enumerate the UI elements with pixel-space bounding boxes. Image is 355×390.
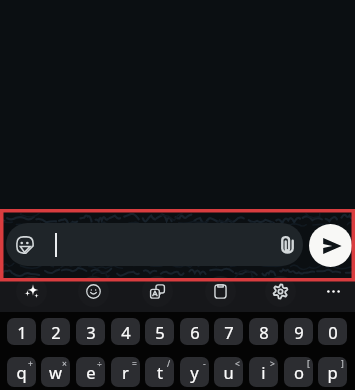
staticText: 6 [190,321,200,343]
button[interactable]: y [180,357,209,387]
staticText: + [28,358,33,370]
staticText: t [157,361,163,383]
button[interactable]: Send [309,224,352,267]
button[interactable]: u [214,357,243,387]
staticText: 2 [51,321,61,343]
staticText: 4 [121,321,131,343]
staticText: 8 [259,321,269,343]
button[interactable]: i [249,357,278,387]
button[interactable]: 6 [180,318,209,345]
staticText: o [294,361,304,383]
button[interactable]: 5 [145,318,174,345]
staticText: 3 [86,321,96,343]
staticText: / [167,358,171,370]
staticText: > [270,358,275,370]
button[interactable]: Clipboard [205,276,236,307]
staticText: y [190,361,199,383]
button[interactable]: r [111,357,140,387]
button[interactable]: 7 [214,318,243,345]
staticText: = [132,358,137,370]
button[interactable]: t [145,357,174,387]
staticText: 7 [224,321,234,343]
staticText: 9 [294,321,304,343]
staticText: < [235,358,240,370]
button[interactable]: 9 [284,318,313,345]
staticText: 1 [17,321,27,343]
button[interactable]: 8 [249,318,278,345]
button[interactable]: o [284,357,313,387]
staticText: i [261,361,266,383]
button[interactable]: q [7,357,36,387]
staticText: p [327,361,338,383]
staticText: [ [307,358,310,370]
staticText: e [86,361,96,383]
staticText: ÷ [97,358,102,370]
button[interactable]: p [318,357,347,387]
staticText: - [203,358,206,370]
button[interactable]: Emoji [78,276,109,307]
staticText: 0 [328,321,338,343]
button[interactable]: Translate [142,276,173,307]
staticText: ] [341,358,344,370]
staticText: × [62,358,67,370]
button[interactable]: AI assist [16,276,47,307]
button[interactable]: Stickers [6,223,303,266]
button[interactable]: 4 [111,318,140,345]
button[interactable]: 0 [318,318,347,345]
staticText: r [122,361,129,383]
button[interactable]: More options [318,276,349,307]
staticText: 5 [155,321,165,343]
button[interactable]: e [76,357,105,387]
button[interactable]: Settings [265,276,296,307]
button[interactable]: 1 [7,318,36,345]
button[interactable]: Stickers [16,236,34,254]
button[interactable]: Attach [281,236,294,254]
staticText: q [16,361,27,383]
button[interactable]: 2 [41,318,70,345]
staticText: w [49,361,62,383]
button[interactable]: w [41,357,70,387]
staticText: u [223,361,234,383]
button[interactable]: 3 [76,318,105,345]
